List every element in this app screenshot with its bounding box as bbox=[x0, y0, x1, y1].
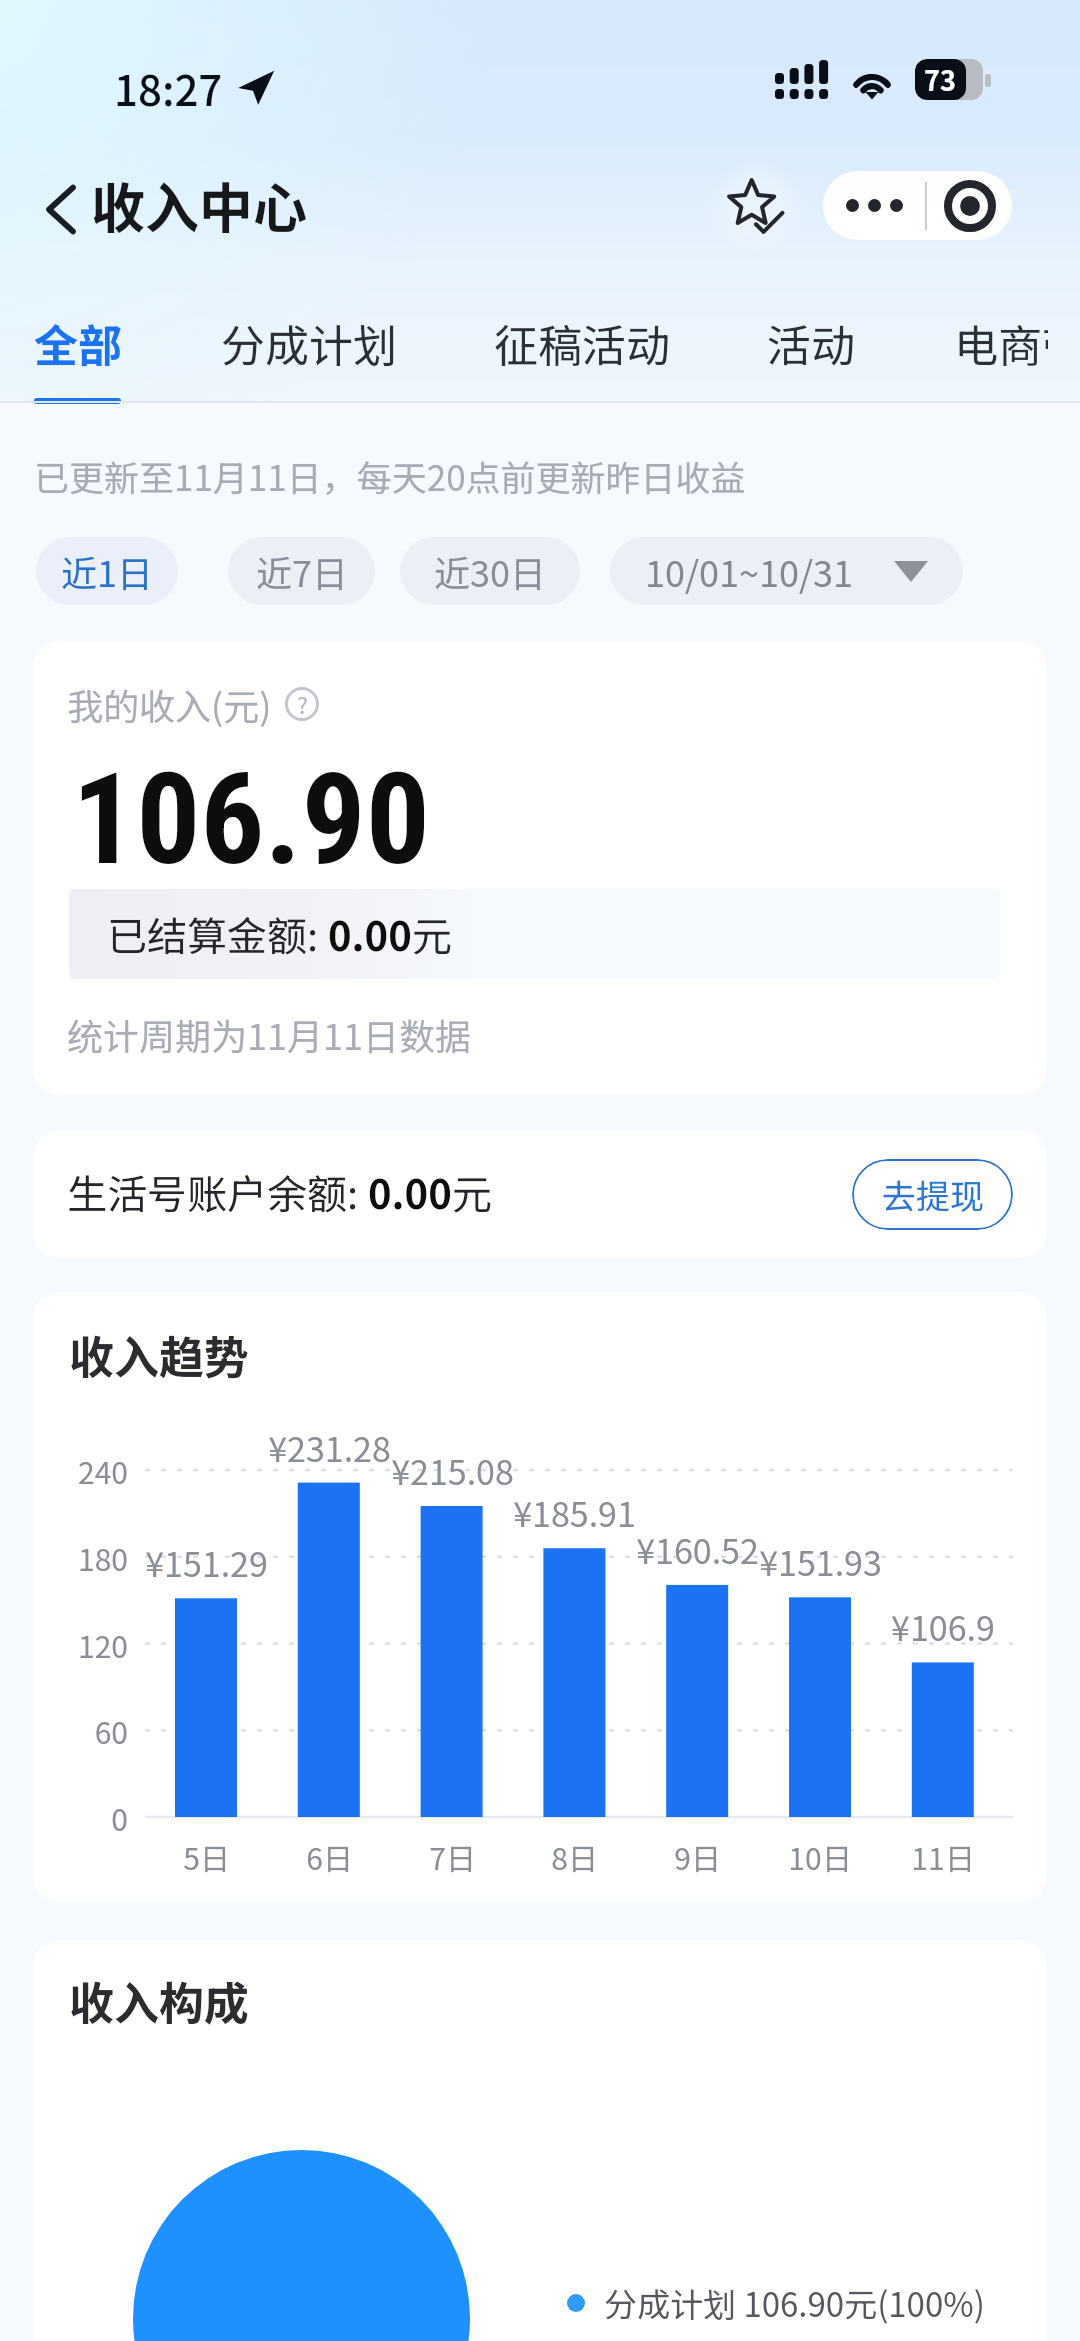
staticText: ¥215.08 bbox=[391, 1446, 514, 1495]
staticText: 106.90 bbox=[72, 745, 430, 894]
staticText: 统计周期为11月11日数据 bbox=[67, 1008, 471, 1060]
staticText: 生活号账户余额: bbox=[67, 1163, 368, 1221]
staticText: 120 bbox=[78, 1623, 128, 1666]
button[interactable]: Close mini program bbox=[927, 171, 1012, 240]
button[interactable]: 近30日 bbox=[400, 537, 580, 605]
staticText: 电商带货 bbox=[954, 311, 1048, 375]
staticText: 元 bbox=[412, 905, 452, 963]
staticText: 元 bbox=[452, 1163, 492, 1221]
staticText: 分成计划 bbox=[221, 311, 397, 375]
staticText: 近1日 bbox=[61, 545, 153, 597]
staticText: 60 bbox=[94, 1709, 128, 1752]
staticText: ¥106.9 bbox=[891, 1602, 995, 1651]
staticText: ¥151.29 bbox=[145, 1538, 268, 1587]
staticText: 活动 bbox=[767, 311, 855, 375]
button[interactable]: Back bbox=[31, 174, 91, 235]
staticText: 73 bbox=[924, 60, 956, 99]
staticText: 0 bbox=[111, 1796, 128, 1839]
staticText: 我的收入(元) bbox=[67, 678, 272, 730]
button[interactable]: 近1日 bbox=[36, 537, 178, 605]
staticText: ? bbox=[297, 687, 308, 720]
button[interactable]: 征稿活动 bbox=[494, 286, 670, 406]
staticText: ¥185.91 bbox=[513, 1488, 636, 1537]
staticText: 5日 bbox=[183, 1835, 230, 1878]
staticText: 已更新至11月11日，每天20点前更新昨日收益 bbox=[34, 450, 746, 501]
staticText: 0.00 bbox=[328, 905, 412, 963]
staticText: 收入趋势 bbox=[69, 1322, 250, 1387]
button[interactable]: 电商带货 bbox=[954, 286, 1048, 406]
staticText: 7日 bbox=[429, 1835, 476, 1878]
button[interactable]: 近7日 bbox=[228, 537, 375, 605]
button[interactable]: More options bbox=[823, 171, 925, 240]
staticText: 10/01~10/31 bbox=[645, 545, 854, 597]
staticText: 去提现 bbox=[882, 1170, 984, 1219]
button[interactable]: 去提现 bbox=[852, 1159, 1013, 1230]
staticText: ¥231.28 bbox=[268, 1423, 391, 1472]
button[interactable]: 全部 bbox=[34, 286, 122, 406]
staticText: 11日 bbox=[911, 1835, 975, 1878]
button[interactable]: 10/01~10/31 bbox=[610, 537, 963, 605]
staticText: 10日 bbox=[788, 1835, 852, 1878]
button[interactable]: 活动 bbox=[767, 286, 855, 406]
staticText: 18:27 bbox=[114, 57, 223, 118]
staticText: ¥160.52 bbox=[636, 1525, 759, 1574]
button[interactable]: 分成计划 bbox=[221, 286, 397, 406]
staticText: ¥151.93 bbox=[759, 1537, 882, 1586]
staticText: 240 bbox=[78, 1449, 128, 1492]
staticText: 征稿活动 bbox=[494, 311, 670, 375]
staticText: 6日 bbox=[306, 1835, 353, 1878]
staticText: 8日 bbox=[551, 1835, 598, 1878]
staticText: 近7日 bbox=[256, 545, 348, 597]
staticText: 180 bbox=[78, 1536, 128, 1579]
button[interactable]: Favorite bbox=[706, 157, 806, 257]
staticText: 已结算金额: bbox=[107, 905, 328, 963]
staticText: 0.00 bbox=[368, 1163, 452, 1221]
staticText: 9日 bbox=[674, 1835, 721, 1878]
staticText: 收入中心 bbox=[91, 165, 307, 243]
staticText: 近30日 bbox=[434, 545, 546, 597]
staticText: 收入构成 bbox=[69, 1968, 250, 2033]
button[interactable]: Help bbox=[285, 687, 319, 721]
staticText: 分成计划 106.90元(100%) bbox=[604, 2279, 985, 2327]
staticText: 全部 bbox=[34, 311, 122, 375]
